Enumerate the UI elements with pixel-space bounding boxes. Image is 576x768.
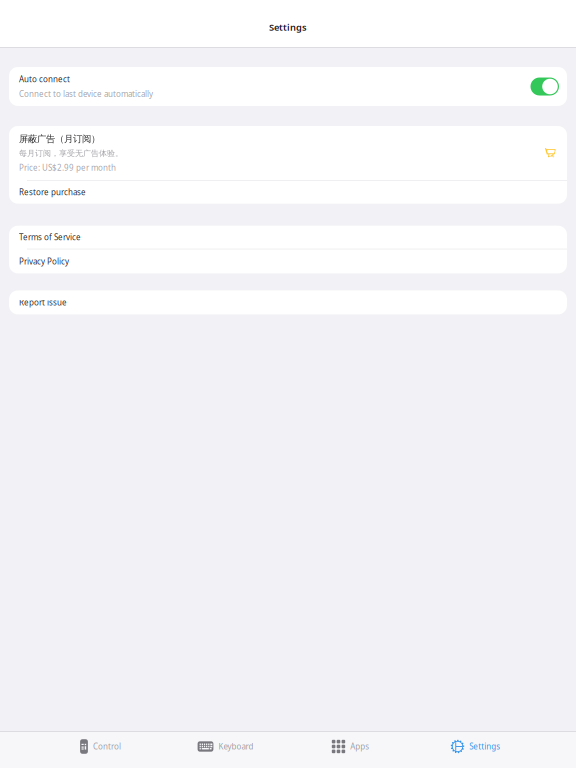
button[interactable]: Restore purchase	[9, 181, 567, 204]
staticText: Apps	[350, 741, 369, 752]
staticText: Report issue	[19, 297, 67, 308]
staticText: Auto connect	[19, 74, 70, 84]
button[interactable]: Terms of Service	[9, 226, 567, 249]
button[interactable]: Apps	[288, 725, 413, 768]
button[interactable]: 屏蔽广告（月订阅）	[9, 126, 567, 180]
staticText: Connect to last device automatically	[19, 88, 153, 99]
staticText: 每月订阅，享受无广告体验。	[19, 148, 123, 158]
button[interactable]: Control	[38, 725, 163, 768]
staticText: 屏蔽广告（月订阅）	[19, 133, 100, 144]
staticText: Restore purchase	[19, 187, 86, 197]
button[interactable]: Privacy Policy	[9, 249, 567, 273]
staticText: Terms of Service	[19, 232, 81, 242]
button[interactable]: Report issue	[9, 290, 567, 314]
staticText: Price: US$2.99 per month	[19, 162, 116, 173]
button[interactable]: Keyboard	[163, 725, 288, 768]
staticText: Control	[93, 741, 121, 752]
button[interactable]: Auto connect	[9, 67, 567, 106]
staticText: Settings	[269, 21, 307, 33]
staticText: Keyboard	[218, 741, 253, 752]
button[interactable]: Settings	[413, 725, 538, 768]
staticText: Privacy Policy	[19, 256, 69, 267]
staticText: Settings	[469, 741, 500, 752]
